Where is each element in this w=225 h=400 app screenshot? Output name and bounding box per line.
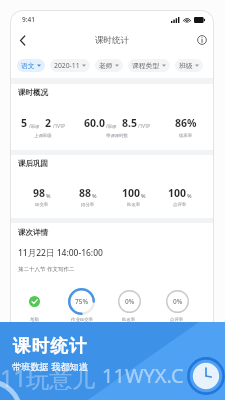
staticText: 点评率 — [170, 317, 184, 323]
staticText: 课程类型 — [132, 61, 160, 70]
staticText: % — [92, 192, 97, 199]
button[interactable]: 0% — [153, 288, 201, 323]
staticText: 课时统计 — [13, 335, 88, 357]
staticText: 98 — [33, 186, 46, 200]
staticText: 批改率 — [127, 202, 141, 208]
staticText: 2020-11 — [54, 61, 80, 70]
button[interactable]: 75% — [58, 288, 105, 323]
staticText: 上课班级 — [34, 133, 52, 139]
staticText: 老师 — [99, 61, 113, 70]
staticText: 9:41 — [22, 15, 35, 24]
staticText: % — [141, 192, 146, 199]
button[interactable]: 课程类型 — [128, 59, 170, 72]
staticText: 第二十八节 作文写作二 — [18, 265, 75, 273]
staticText: /1V1P — [138, 123, 150, 129]
staticText: /班课 — [29, 123, 40, 129]
staticText: 86% — [175, 116, 197, 130]
button[interactable]: 语文 — [17, 59, 45, 72]
staticText: 得分率 — [81, 202, 95, 208]
staticText: 班级 — [179, 61, 193, 70]
staticText: 批改率 — [122, 317, 136, 323]
staticText: 100 — [122, 186, 141, 200]
staticText: 88 — [79, 186, 92, 200]
button[interactable]: Info — [194, 32, 210, 48]
staticText: /班课 — [106, 123, 117, 129]
button[interactable]: 班级 — [175, 59, 203, 72]
staticText: 11WYX.C — [102, 362, 184, 389]
button[interactable]: 0% — [105, 288, 153, 323]
button[interactable]: Back — [14, 32, 30, 48]
staticText: 课次详情 — [18, 228, 48, 237]
button[interactable]: 2020-11 — [50, 59, 90, 72]
staticText: 作业提交率 — [71, 317, 93, 323]
staticText: 11月22日 14:00-16:00 — [18, 247, 103, 259]
staticText: 课时概况 — [18, 88, 48, 97]
staticText: 11玩意儿 — [0, 362, 96, 393]
staticText: % — [46, 192, 51, 199]
staticText: 0% — [173, 297, 183, 306]
staticText: 0% — [125, 297, 135, 306]
staticText: /1V1P — [53, 123, 65, 129]
staticText: 60.0 — [84, 116, 105, 130]
staticText: 课时统计 — [95, 35, 129, 46]
button[interactable]: 老师 — [95, 59, 123, 72]
staticText: 课后巩固 — [18, 159, 48, 168]
staticText: 带课课时数 — [106, 133, 128, 139]
staticText: % — [187, 192, 192, 199]
staticText: 考勤 — [30, 317, 39, 323]
staticText: 100 — [168, 186, 187, 200]
staticText: 语文 — [21, 61, 35, 70]
staticText: 75% — [75, 297, 88, 306]
staticText: 点评率 — [173, 202, 187, 208]
staticText: 提交率 — [35, 202, 49, 208]
staticText: 带班数据 我都知道 — [12, 360, 88, 373]
staticText: 2 — [45, 116, 52, 130]
staticText: 5 — [21, 116, 28, 130]
staticText: 续班率 — [179, 133, 193, 139]
button[interactable]: 考勤 — [11, 288, 58, 323]
staticText: 8.5 — [122, 116, 137, 130]
